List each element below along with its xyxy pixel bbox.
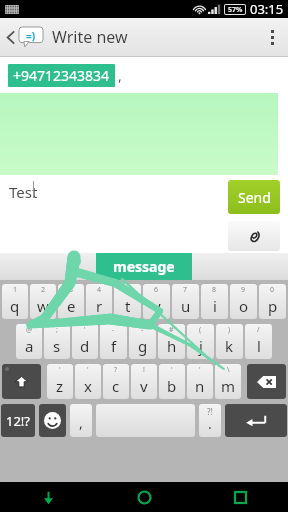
button[interactable]: (	[187, 324, 214, 359]
staticText: b	[167, 376, 177, 396]
button[interactable]: Recent apps	[192, 482, 288, 512]
staticText: n	[195, 376, 205, 396]
button[interactable]: 0	[259, 284, 286, 319]
button[interactable]: 1	[2, 284, 28, 319]
staticText: ,	[79, 413, 83, 432]
button[interactable]: Enter	[225, 404, 287, 437]
staticText: 57%	[228, 5, 243, 14]
button[interactable]: 7	[172, 284, 199, 319]
button[interactable]: 4	[86, 284, 112, 319]
button[interactable]: @	[16, 324, 42, 359]
staticText: ?	[114, 365, 118, 375]
button[interactable]: Backspace	[247, 364, 286, 399]
button[interactable]: ,	[70, 404, 92, 437]
staticText: !	[143, 365, 145, 375]
button[interactable]: '	[47, 364, 73, 399]
staticText: e	[67, 296, 76, 316]
staticText: v	[140, 376, 148, 396]
staticText: '	[87, 365, 89, 375]
staticText: '	[59, 365, 61, 375]
staticText: '	[199, 365, 201, 375]
staticText: l	[257, 336, 261, 356]
staticText: -	[112, 325, 115, 335]
button[interactable]: 5	[114, 284, 141, 319]
button[interactable]: Hide keyboard	[0, 482, 96, 512]
staticText: g	[138, 336, 148, 356]
staticText: ?!	[207, 406, 213, 417]
staticText: ,	[118, 66, 122, 85]
staticText: 8	[212, 285, 217, 295]
button[interactable]: '	[159, 364, 185, 399]
staticText: x	[84, 376, 92, 396]
button[interactable]: /	[245, 324, 272, 359]
button[interactable]: '	[187, 364, 213, 399]
button[interactable]: '	[72, 324, 98, 359]
button[interactable]: ?	[103, 364, 129, 399]
staticText: '	[84, 325, 86, 335]
staticText: 1	[13, 285, 18, 295]
staticText: o	[239, 296, 249, 316]
button[interactable]: '	[75, 364, 101, 399]
button[interactable]: ;	[44, 324, 70, 359]
staticText: 12!?	[6, 412, 31, 430]
button[interactable]: 8	[201, 284, 228, 319]
button[interactable]: More options	[265, 24, 280, 51]
staticText: w	[37, 296, 49, 316]
staticText: #	[169, 325, 174, 335]
button[interactable]: 12!?	[1, 404, 35, 437]
button[interactable]: +94712343834	[8, 64, 115, 87]
button[interactable]: 6	[143, 284, 170, 319]
staticText: u	[181, 296, 191, 316]
button[interactable]: 2	[30, 284, 56, 319]
staticText: Send	[238, 188, 271, 207]
button[interactable]: Shift	[2, 364, 41, 399]
button[interactable]: Back	[4, 22, 130, 52]
staticText: 2	[41, 285, 46, 295]
staticText: m	[221, 376, 236, 396]
staticText: 4	[97, 285, 102, 295]
staticText: c	[112, 376, 120, 396]
button[interactable]: 9	[230, 284, 257, 319]
staticText: '	[171, 365, 173, 375]
staticText: \	[227, 365, 230, 375]
staticText: 0	[270, 285, 275, 295]
button[interactable]	[0, 93, 278, 175]
button[interactable]: Space	[96, 404, 195, 437]
button[interactable]: Send	[228, 180, 280, 214]
staticText: 5	[125, 285, 130, 295]
staticText: Write new	[52, 26, 128, 48]
staticText: q	[10, 296, 20, 316]
button[interactable]: Attach	[228, 221, 280, 251]
button[interactable]: -	[100, 324, 127, 359]
button[interactable]: ?!	[199, 404, 221, 437]
staticText: +94712343834	[13, 66, 110, 85]
button[interactable]: #	[158, 324, 185, 359]
staticText: t	[125, 296, 131, 316]
staticText: 7	[183, 285, 188, 295]
button[interactable]: Home	[96, 482, 192, 512]
button[interactable]: message	[96, 253, 192, 280]
staticText: =)	[26, 29, 36, 43]
staticText: 6	[154, 285, 159, 295]
staticText: -	[141, 325, 144, 335]
button[interactable]: !	[131, 364, 157, 399]
staticText: .	[208, 414, 212, 433]
staticText: /	[257, 325, 260, 335]
button[interactable]: Emoji	[39, 404, 66, 437]
staticText: r	[96, 296, 103, 316]
staticText: (	[199, 325, 202, 335]
button[interactable]: \	[215, 364, 241, 399]
other: Back	[6, 30, 15, 45]
button[interactable]: )	[216, 324, 243, 359]
staticText: 03:15	[250, 0, 284, 18]
staticText: 9	[241, 285, 246, 295]
staticText: z	[56, 376, 64, 396]
staticText: y	[153, 296, 161, 316]
button[interactable]: -	[129, 324, 156, 359]
button[interactable]: 3	[58, 284, 84, 319]
staticText: a	[25, 336, 34, 356]
staticText: )	[228, 325, 231, 335]
staticText: 3	[69, 285, 74, 295]
staticText: s	[53, 336, 61, 356]
staticText: h	[167, 336, 177, 356]
